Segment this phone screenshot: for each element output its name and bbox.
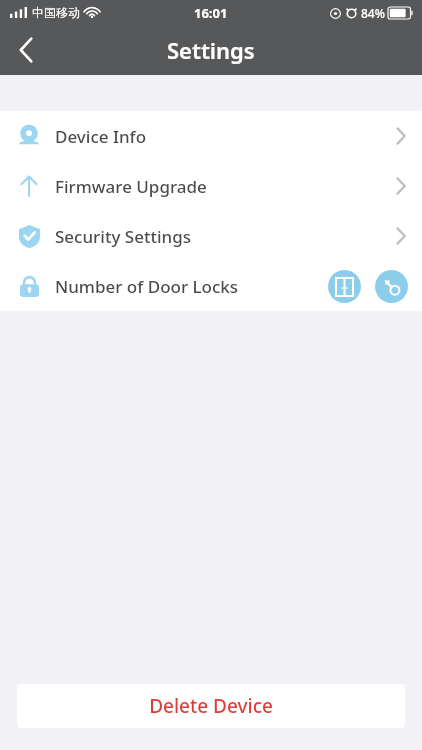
- button[interactable]: Security Settings: [0, 211, 422, 261]
- staticText: Security Settings: [55, 225, 191, 248]
- button[interactable]: Double door lock: [328, 270, 361, 303]
- staticText: Delete Device: [149, 693, 273, 719]
- button[interactable]: Firmware Upgrade: [0, 161, 422, 211]
- staticText: Device Info: [55, 125, 147, 148]
- staticText: Number of Door Locks: [55, 275, 239, 298]
- button[interactable]: Device Info: [0, 111, 422, 161]
- button[interactable]: Back: [0, 25, 52, 75]
- button[interactable]: Delete Device: [17, 684, 405, 728]
- button[interactable]: Single key lock: [375, 270, 408, 303]
- staticText: 16:01: [194, 4, 228, 22]
- staticText: Settings: [167, 35, 255, 65]
- staticText: 中国移动: [32, 5, 80, 20]
- staticText: 84%: [361, 5, 385, 21]
- staticText: Firmware Upgrade: [55, 175, 207, 198]
